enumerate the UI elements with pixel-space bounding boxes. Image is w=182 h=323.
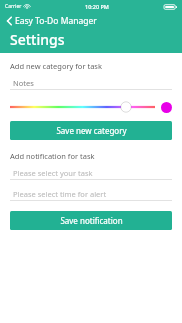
- staticText: Please select time for alert: [13, 189, 107, 199]
- other: Back: [6, 16, 13, 26]
- staticText: Add notification for task: [10, 151, 95, 161]
- staticText: Settings: [10, 30, 65, 49]
- staticText: Please select your task: [13, 168, 93, 178]
- staticText: 10:20 PM: [85, 3, 109, 10]
- button[interactable]: [10, 100, 155, 114]
- staticText: Save notification: [60, 215, 123, 226]
- staticText: Carrier: [5, 3, 22, 10]
- staticText: Save new category: [56, 125, 127, 136]
- button[interactable]: Save new category: [10, 121, 172, 140]
- button[interactable]: Please select your task: [10, 167, 172, 180]
- button[interactable]: Please select time for alert: [10, 188, 172, 201]
- button[interactable]: Notes: [10, 77, 172, 90]
- button[interactable]: Selected colour: [161, 102, 172, 113]
- staticText: Add new category for task: [10, 61, 102, 71]
- button[interactable]: Save notification: [10, 211, 172, 230]
- button[interactable]: Back: [4, 14, 99, 28]
- staticText: Easy To-Do Manager: [15, 15, 97, 27]
- staticText: Notes: [13, 78, 34, 88]
